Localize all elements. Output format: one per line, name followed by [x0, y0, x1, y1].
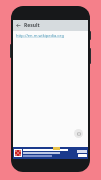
- button[interactable]: Back: [13, 20, 24, 31]
- staticText: Result: [24, 22, 40, 29]
- button[interactable]: [78, 154, 87, 157]
- staticText: http://en.m.wikipedia.org: [16, 33, 64, 38]
- button[interactable]: Scroll to top: [74, 129, 83, 138]
- button[interactable]: http://en.m.wikipedia.org: [16, 33, 64, 38]
- button[interactable]: [13, 147, 88, 159]
